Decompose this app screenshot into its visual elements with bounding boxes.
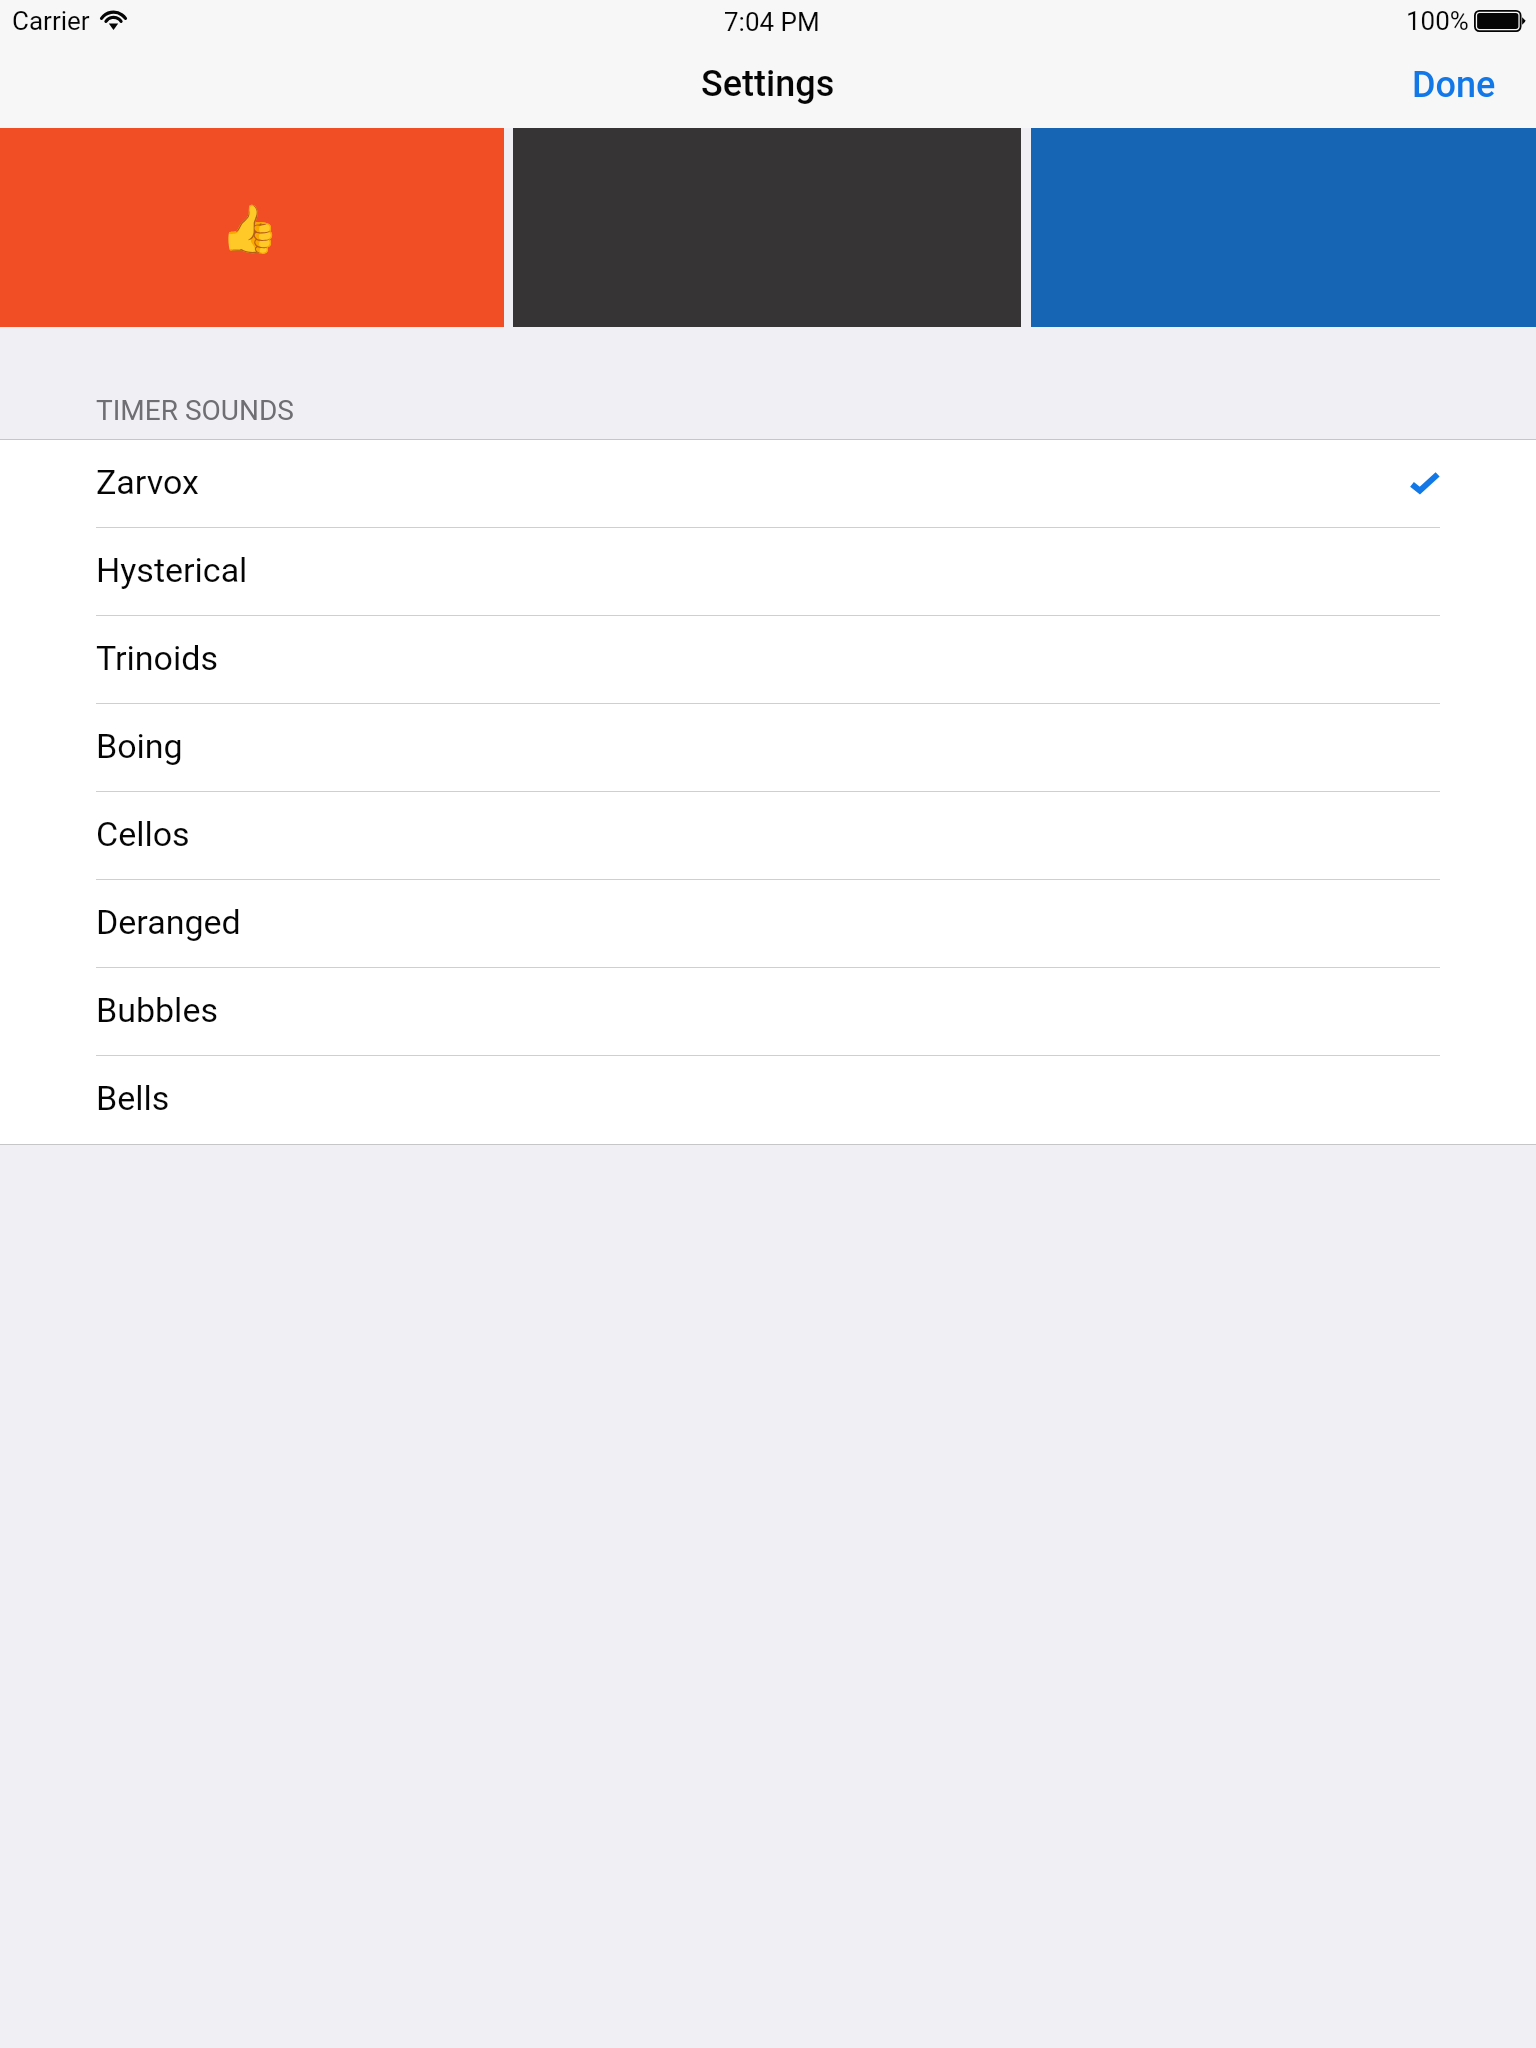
staticText: 👍: [220, 201, 279, 256]
staticText: TIMER SOUNDS: [96, 394, 294, 427]
button[interactable]: Deranged: [0, 880, 1536, 968]
staticText: Carrier: [12, 6, 90, 36]
staticText: Deranged: [96, 902, 241, 942]
staticText: 7:04 PM: [724, 7, 820, 37]
staticText: Done: [1412, 64, 1496, 106]
button[interactable]: Zarvox: [0, 440, 1536, 528]
staticText: Zarvox: [96, 462, 199, 502]
staticText: Boing: [96, 726, 183, 766]
button[interactable]: Bells: [0, 1056, 1536, 1144]
button[interactable]: Hysterical: [0, 528, 1536, 616]
staticText: Bubbles: [96, 990, 218, 1030]
button[interactable]: Boing: [0, 704, 1536, 792]
staticText: 100%: [1406, 6, 1469, 36]
button[interactable]: Cellos: [0, 792, 1536, 880]
other: Selected: [1409, 471, 1441, 497]
button[interactable]: Thumbs up: [0, 128, 504, 327]
button[interactable]: Done: [1382, 46, 1536, 124]
button[interactable]: Trinoids: [0, 616, 1536, 704]
staticText: Trinoids: [96, 638, 218, 678]
staticText: Settings: [701, 63, 835, 105]
staticText: Bells: [96, 1078, 170, 1118]
button[interactable]: Bubbles: [0, 968, 1536, 1056]
staticText: Cellos: [96, 814, 190, 854]
staticText: Hysterical: [96, 550, 248, 590]
